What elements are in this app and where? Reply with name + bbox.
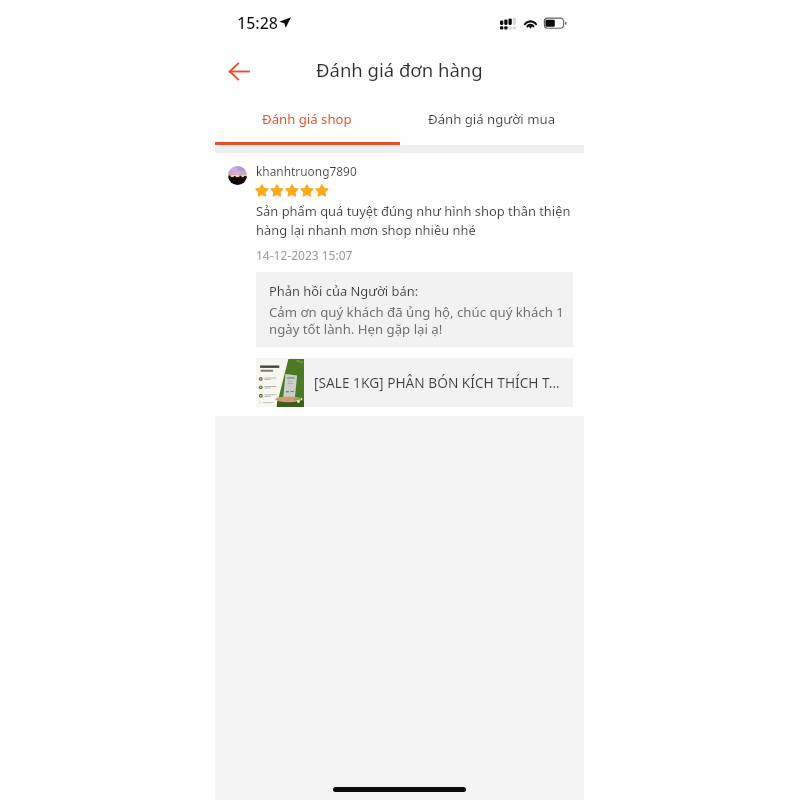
staticText: Cảm ơn quý khách đã ủng hộ, chúc quý khá… (269, 303, 564, 337)
staticText: Đánh giá người mua (428, 110, 556, 128)
staticText: Đánh giá shop (262, 110, 352, 128)
staticText: Đánh giá đơn hàng (316, 57, 483, 82)
button[interactable]: khanhtruong7890 (256, 160, 357, 177)
staticText: [SALE 1KG] PHÂN BÓN KÍCH THÍCH T… (314, 373, 560, 392)
staticText: Sản phẩm quá tuyệt đúng như hình shop th… (256, 202, 578, 239)
staticText: 15:28 (237, 12, 278, 34)
staticText: Phản hồi của Người bán: (269, 282, 419, 300)
button[interactable]: Đánh giá shop (215, 102, 399, 136)
button[interactable]: Đánh giá người mua (399, 102, 584, 136)
button[interactable]: Back (219, 53, 259, 89)
staticText: 14-12-2023 15:07 (256, 247, 353, 263)
staticText: khanhtruong7890 (256, 163, 357, 179)
button[interactable]: [SALE 1KG] PHÂN BÓN KÍCH THÍCH T… (256, 358, 573, 407)
